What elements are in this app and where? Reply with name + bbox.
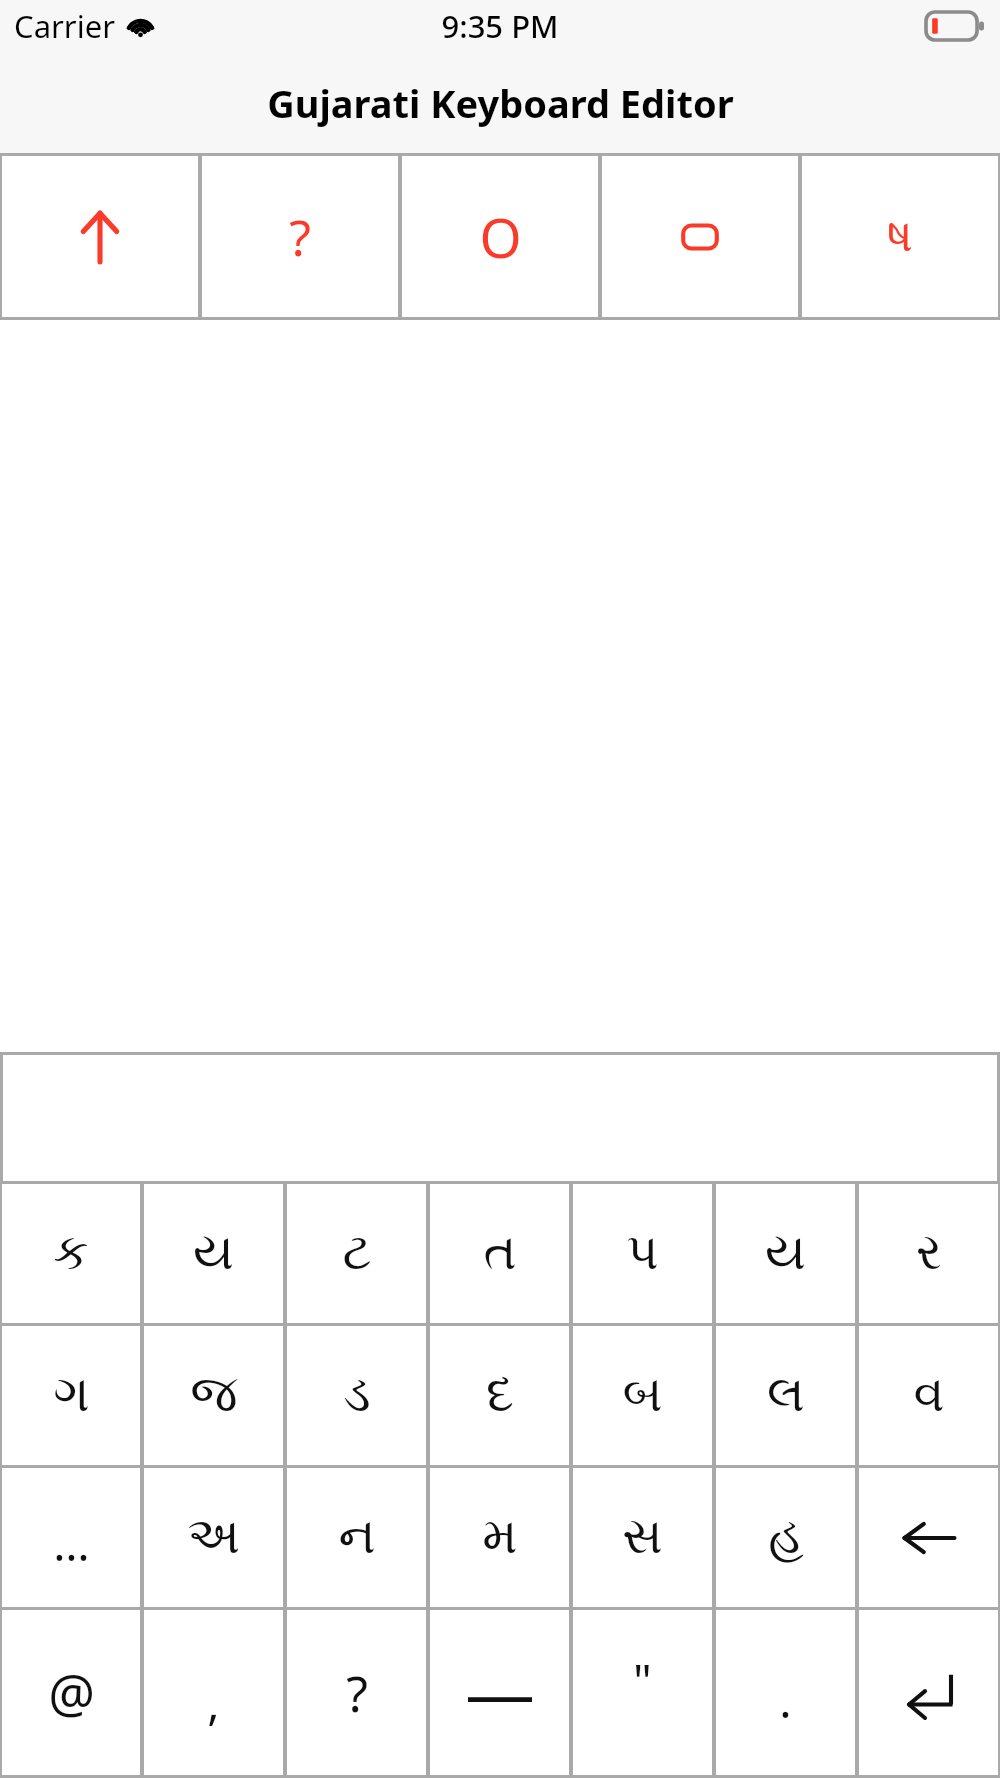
staticText: ? (289, 203, 311, 271)
button[interactable]: Key ડ (287, 1326, 426, 1465)
button[interactable]: Key પ (573, 1184, 712, 1323)
staticText: હ (768, 1513, 804, 1563)
button[interactable]: Key અ (144, 1468, 283, 1607)
button[interactable]: Key @ (2, 1610, 140, 1775)
button[interactable]: Key ટ (287, 1184, 426, 1323)
staticText: ય (193, 1229, 234, 1279)
staticText: ર (916, 1229, 942, 1279)
button[interactable]: Key , (144, 1610, 283, 1775)
button[interactable]: Key ય (716, 1184, 855, 1323)
button[interactable]: Key ર (859, 1184, 998, 1323)
button[interactable]: Key ત (430, 1184, 569, 1323)
staticText: O (479, 200, 522, 274)
button[interactable]: Shift (2, 156, 198, 317)
button[interactable]: Key ય (144, 1184, 283, 1323)
staticText: ષ (887, 214, 913, 260)
staticText: " (633, 1649, 652, 1712)
other: Battery low (926, 12, 984, 40)
button[interactable]: Key મ (430, 1468, 569, 1607)
staticText: ક (53, 1229, 89, 1279)
staticText: ? (346, 1659, 368, 1727)
button[interactable]: Key ક (2, 1184, 140, 1323)
staticText: ત (483, 1229, 517, 1279)
staticText: ડ (343, 1371, 371, 1421)
staticText: ટ (342, 1229, 372, 1279)
staticText: ન (338, 1513, 376, 1563)
staticText: ગ (53, 1371, 90, 1421)
staticText: ય (765, 1229, 806, 1279)
button[interactable]: Key … (2, 1468, 140, 1607)
button[interactable]: Return (859, 1610, 998, 1775)
staticText: . (779, 1669, 792, 1732)
staticText: દ (486, 1371, 514, 1421)
staticText: સ (622, 1513, 663, 1563)
button[interactable]: Space (430, 1610, 569, 1775)
staticText: મ (482, 1513, 518, 1563)
button[interactable]: Key ? (202, 156, 398, 317)
staticText: બ (622, 1371, 663, 1421)
button[interactable]: Key દ (430, 1326, 569, 1465)
button[interactable]: Key લ (716, 1326, 855, 1465)
staticText: @ (48, 1657, 95, 1728)
staticText: વ (913, 1371, 945, 1421)
button[interactable]: Key . (716, 1610, 855, 1775)
button[interactable]: Key સ (573, 1468, 712, 1607)
button[interactable]: Key બ (573, 1326, 712, 1465)
staticText: 9:35 PM (441, 5, 559, 47)
staticText: Gujarati Keyboard Editor (267, 77, 734, 129)
button[interactable]: Key વ (859, 1326, 998, 1465)
button[interactable]: Key " (573, 1610, 712, 1775)
button[interactable]: Key ગ (2, 1326, 140, 1465)
staticText: લ (767, 1371, 805, 1421)
button[interactable]: Key ષ (802, 156, 998, 317)
staticText: અ (187, 1513, 240, 1563)
button[interactable]: Key જ (144, 1326, 283, 1465)
button[interactable]: Key હ (716, 1468, 855, 1607)
button[interactable]: Key ? (287, 1610, 426, 1775)
staticText: , (207, 1671, 220, 1734)
staticText: Carrier (14, 5, 115, 47)
staticText: … (53, 1512, 90, 1575)
button[interactable]: Backspace (859, 1468, 998, 1607)
button[interactable]: Key ન (287, 1468, 426, 1607)
staticText: પ (626, 1229, 659, 1279)
button[interactable]: Rounded box key (602, 156, 798, 317)
button[interactable]: Key O (402, 156, 598, 317)
staticText: જ (190, 1371, 238, 1421)
